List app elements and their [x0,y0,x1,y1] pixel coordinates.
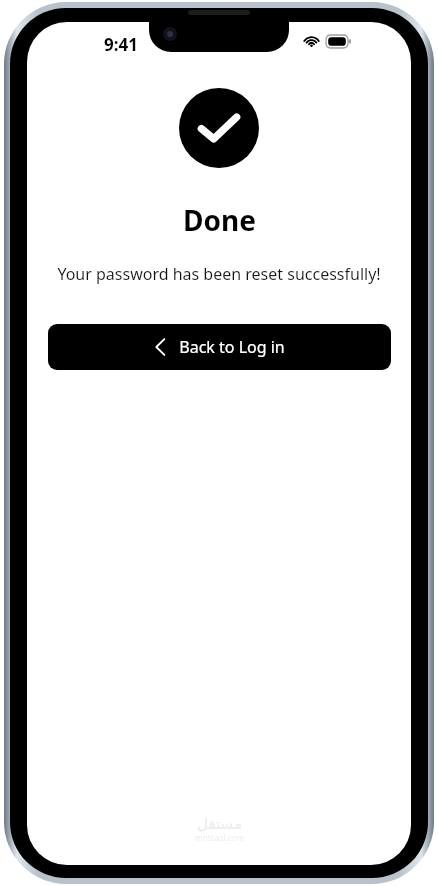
staticText: mostaql.com [195,832,244,843]
button[interactable]: Back to Log in [48,324,391,370]
staticText: Done [183,201,256,239]
staticText: مستقل [197,815,242,832]
staticText: Back to Log in [179,336,285,358]
staticText: Your password has been reset successfull… [57,263,381,285]
staticText: 9:41 [104,33,138,55]
